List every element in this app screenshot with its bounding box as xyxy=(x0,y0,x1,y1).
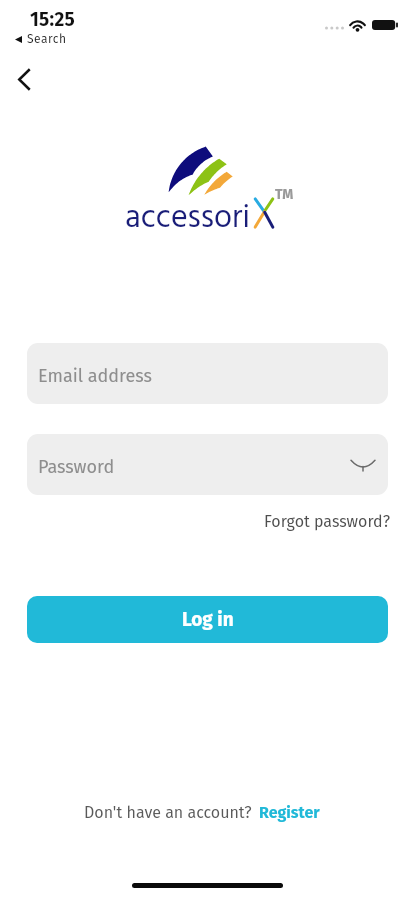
button[interactable]: Email address xyxy=(27,343,388,404)
staticText: Log in xyxy=(182,608,234,631)
staticText: Don't have an account? xyxy=(84,803,252,822)
button[interactable]: Back xyxy=(0,55,48,103)
staticText: TM xyxy=(275,186,294,203)
button[interactable]: Log in xyxy=(27,596,388,643)
staticText: Email address xyxy=(38,365,152,387)
staticText: Register xyxy=(259,803,320,822)
staticText: Forgot password? xyxy=(264,512,390,531)
staticText: Password xyxy=(38,456,115,478)
button[interactable]: Register xyxy=(259,803,320,822)
button[interactable]: Password xyxy=(27,434,388,495)
button[interactable]: Show password xyxy=(350,452,376,478)
button[interactable]: Forgot password? xyxy=(264,508,390,535)
staticText: 15:25 xyxy=(30,8,76,31)
staticText: Search xyxy=(27,32,67,46)
staticText: accessori xyxy=(125,193,250,244)
